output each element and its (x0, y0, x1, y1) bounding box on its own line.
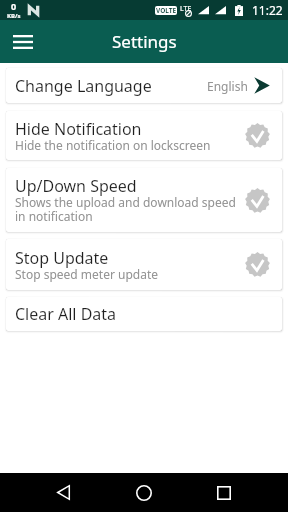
staticText: KB/s (7, 12, 21, 20)
button[interactable]: Up/Down Speed (6, 168, 282, 232)
staticText: Shows the upload and download speed in n… (15, 194, 245, 224)
button[interactable]: Stop Update (6, 239, 282, 290)
button[interactable]: Clear All Data (6, 297, 282, 331)
staticText: Hide Notification (15, 118, 142, 140)
staticText: Change Language (15, 75, 152, 97)
staticText: LTE (180, 4, 192, 14)
staticText: Clear All Data (15, 303, 117, 325)
button[interactable]: Hide Notification (6, 111, 282, 160)
button[interactable]: Change Language (6, 68, 282, 103)
staticText: Hide the notification on lockscreen (15, 137, 211, 153)
button[interactable]: Recent apps (200, 473, 247, 512)
staticText: Stop speed meter update (15, 266, 159, 282)
button[interactable]: Open navigation menu (9, 28, 37, 56)
staticText: 11:22 (252, 2, 283, 18)
staticText: Settings (112, 30, 177, 53)
button[interactable]: Back (40, 473, 87, 512)
staticText: 0 (11, 0, 17, 12)
staticText: Stop Update (15, 247, 109, 269)
button[interactable]: Home (120, 473, 167, 512)
staticText: English (207, 78, 248, 94)
staticText: Up/Down Speed (15, 175, 137, 197)
staticText: VOLTE (156, 6, 177, 15)
